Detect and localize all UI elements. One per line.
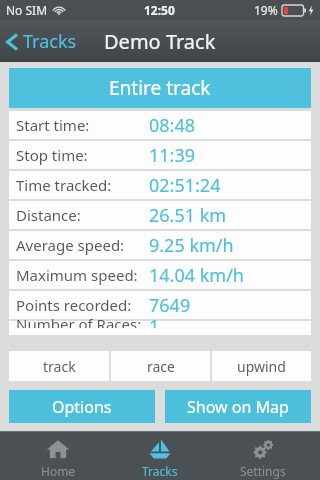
staticText: 26.51 km [149, 203, 227, 228]
button[interactable]: Show on Map [165, 390, 311, 423]
button[interactable]: Points recorded: [9, 291, 311, 319]
staticText: race [147, 357, 175, 376]
button[interactable]: Settings [218, 432, 308, 480]
staticText: No SIM [6, 2, 48, 18]
staticText: Options [52, 396, 112, 418]
staticText: Points recorded: [16, 295, 132, 315]
staticText: 9.25 km/h [149, 233, 234, 258]
staticText: Settings [240, 463, 286, 479]
staticText: 11:39 [149, 143, 196, 168]
staticText: Home [41, 463, 76, 479]
button[interactable]: Number of Races: [9, 321, 311, 335]
staticText: Demo Track [104, 28, 216, 55]
button[interactable]: Start time: [9, 111, 311, 139]
button[interactable]: Entire track [9, 68, 311, 108]
staticText: 19% [254, 2, 278, 18]
staticText: Number of Races: [16, 314, 142, 328]
staticText: Stop time: [16, 145, 88, 165]
staticText: track [43, 357, 76, 376]
button[interactable]: Stop time: [9, 141, 311, 169]
staticText: Show on Map [187, 396, 289, 418]
staticText: 7649 [149, 293, 191, 318]
button[interactable]: race [111, 351, 210, 381]
staticText: Maximum speed: [16, 265, 138, 285]
button[interactable]: Time tracked: [9, 171, 311, 199]
staticText: Tracks [142, 463, 178, 479]
button[interactable]: Tracks [6, 29, 77, 54]
button[interactable]: Maximum speed: [9, 261, 311, 289]
button[interactable]: Home [13, 432, 103, 480]
button[interactable]: Options [9, 390, 155, 423]
staticText: Time tracked: [16, 175, 112, 195]
staticText: upwind [237, 357, 286, 376]
staticText: Tracks [23, 29, 77, 54]
staticText: 08:48 [149, 113, 196, 138]
staticText: Distance: [16, 205, 81, 225]
staticText: Average speed: [16, 235, 125, 255]
staticText: 02:51:24 [149, 173, 221, 198]
staticText: Start time: [16, 115, 90, 135]
staticText: 1 [149, 314, 160, 328]
button[interactable]: Average speed: [9, 231, 311, 259]
staticText: Entire track [109, 75, 211, 101]
staticText: 14.04 km/h [149, 263, 244, 288]
button[interactable]: Distance: [9, 201, 311, 229]
staticText: 12:50 [144, 2, 175, 18]
button[interactable]: track [9, 351, 109, 381]
button[interactable]: upwind [212, 351, 311, 381]
button[interactable]: Tracks [115, 432, 205, 480]
